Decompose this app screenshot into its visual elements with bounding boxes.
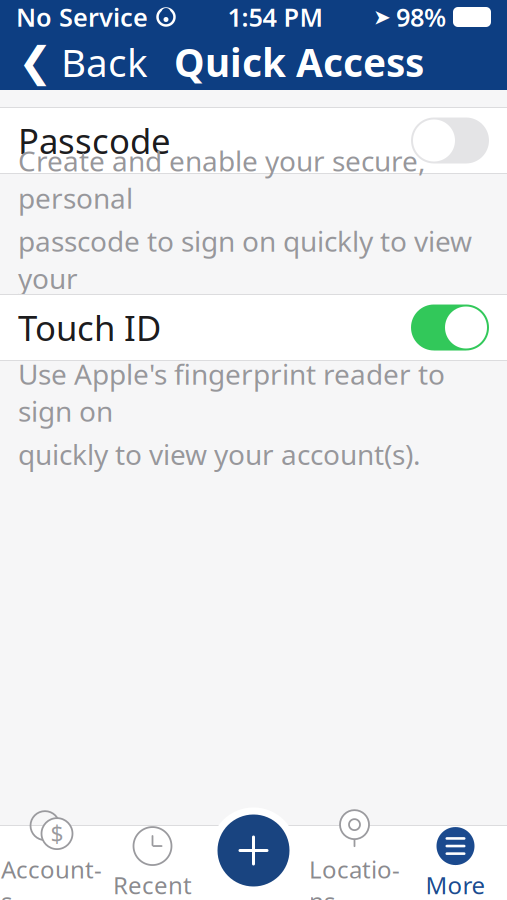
button[interactable]: Passcode — [0, 108, 507, 173]
button[interactable]: Add — [203, 807, 304, 893]
staticText: Touch ID — [18, 304, 161, 350]
button[interactable]: Recent — [102, 826, 203, 900]
staticText: passcode to sign on quickly to view your — [18, 222, 472, 297]
button[interactable]: More — [405, 826, 506, 900]
staticText: More — [425, 869, 485, 900]
staticText: 1:54 PM — [227, 0, 323, 34]
staticText: Quick Access — [174, 36, 424, 88]
staticText: 98% — [396, 0, 446, 34]
staticText: ➤ — [373, 5, 391, 29]
staticText: Create and enable your secure, personal — [18, 142, 426, 216]
staticText: Back — [61, 36, 148, 88]
button[interactable]: Locations — [304, 826, 405, 900]
staticText: $ — [50, 819, 63, 849]
button[interactable]: Touch ID — [0, 295, 507, 360]
staticText: Recent — [113, 869, 192, 900]
staticText: Locations — [309, 853, 400, 900]
button[interactable]: $ — [1, 826, 102, 900]
staticText: Accounts — [1, 853, 102, 900]
button[interactable]: ❮ — [0, 34, 160, 90]
staticText: No Service — [16, 0, 148, 34]
staticText: Passcode — [18, 117, 171, 163]
staticText: Use Apple's fingerprint reader to sign o… — [18, 355, 445, 430]
staticText: account(s). — [18, 303, 158, 340]
staticText: ❮ — [18, 38, 53, 85]
staticText: quickly to view your account(s). — [18, 436, 421, 473]
